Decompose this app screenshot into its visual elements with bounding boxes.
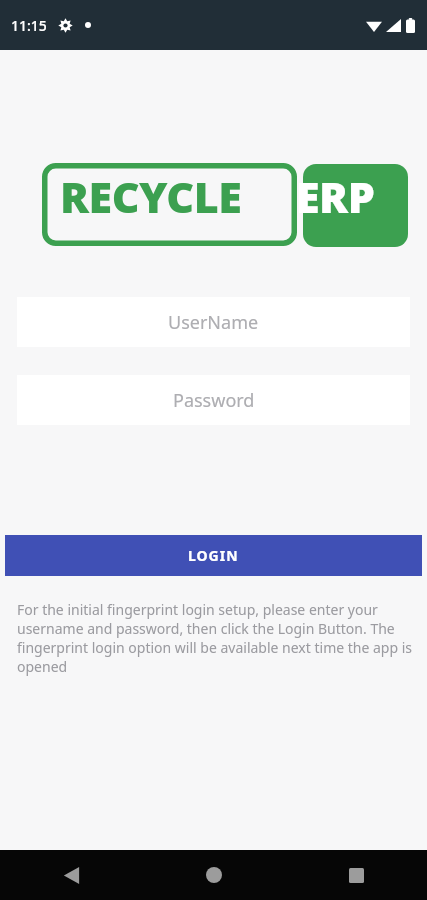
staticText: RECYCLE bbox=[60, 167, 242, 226]
staticText: UserName bbox=[168, 310, 259, 335]
button[interactable]: UserName bbox=[17, 297, 410, 347]
button[interactable]: Recents bbox=[285, 850, 427, 900]
button[interactable]: Password bbox=[17, 375, 410, 425]
button[interactable]: Back bbox=[0, 850, 143, 900]
button[interactable]: Home bbox=[143, 850, 285, 900]
staticText: 11:15 bbox=[11, 16, 47, 35]
staticText: Password bbox=[173, 388, 255, 413]
staticText: LOGIN bbox=[188, 546, 239, 565]
staticText: For the initial fingerprint login setup,… bbox=[17, 600, 416, 676]
button[interactable]: LOGIN bbox=[5, 535, 422, 576]
staticText: ERP bbox=[296, 167, 375, 226]
